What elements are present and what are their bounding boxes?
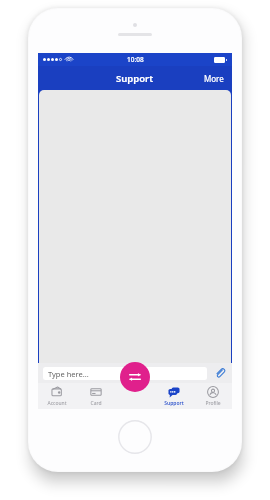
button[interactable]: Support [154,383,193,409]
staticText: Profile [205,400,221,407]
staticText: 10:08 [127,55,144,64]
button[interactable]: Account [38,383,76,409]
button[interactable]: Type here... [43,367,207,380]
button[interactable]: Attach file [213,366,227,380]
button[interactable]: Transfer [120,362,150,392]
staticText: Account [47,400,67,407]
staticText: Type here... [48,369,89,379]
button[interactable]: More [196,68,232,89]
staticText: Support [164,400,184,407]
staticText: More [204,73,224,84]
button[interactable]: Profile [193,383,232,409]
button[interactable]: Card [76,383,115,409]
staticText: Card [90,400,102,407]
staticText: Support [116,72,154,85]
